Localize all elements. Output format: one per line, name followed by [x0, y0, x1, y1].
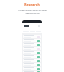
staticText: Lorem ipsum dolor sit amet: [18, 9, 47, 12]
button[interactable]: [23, 51, 41, 54]
button[interactable]: [23, 39, 41, 42]
button[interactable]: [23, 67, 41, 70]
button[interactable]: [23, 47, 41, 50]
staticText: Research: [24, 2, 40, 7]
button[interactable]: [23, 35, 41, 38]
button[interactable]: [23, 71, 41, 72]
button[interactable]: [23, 43, 41, 46]
button[interactable]: [23, 63, 41, 66]
button[interactable]: [23, 55, 41, 58]
button[interactable]: [23, 59, 41, 62]
staticText: adipiscing elit: [25, 12, 40, 15]
